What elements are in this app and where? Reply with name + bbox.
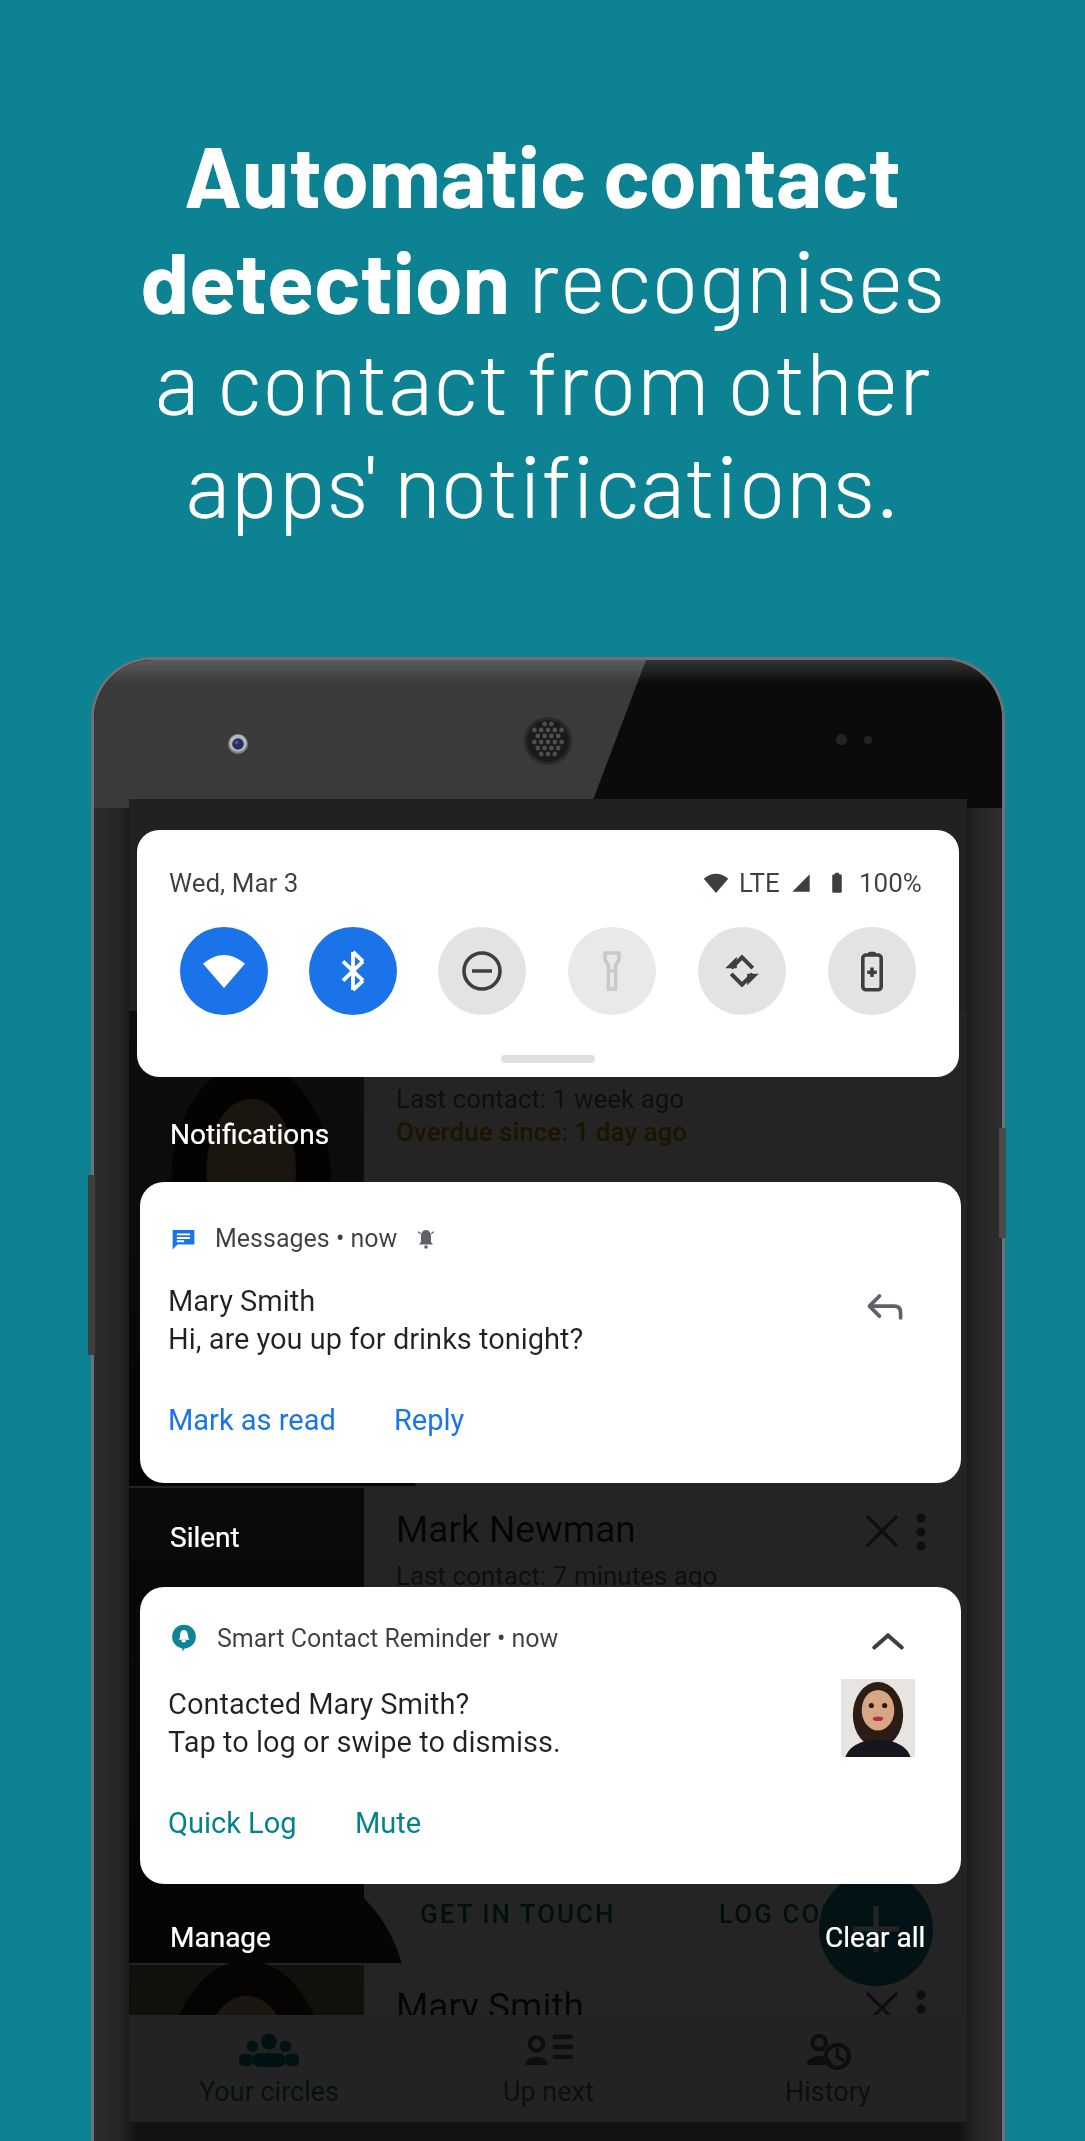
- button[interactable]: LOG CONTACT: [719, 1899, 914, 1929]
- staticText: detection: [140, 228, 510, 331]
- staticText: Smart Contact Reminder • now: [217, 1624, 559, 1653]
- button[interactable]: Up next: [409, 2015, 688, 2122]
- staticText: Tap to log or swipe to dismiss.: [168, 1725, 561, 1759]
- button[interactable]: History: [688, 2015, 967, 2122]
- other: More options: [915, 1512, 927, 1552]
- button[interactable]: Reply: [394, 1403, 465, 1437]
- staticText: Silent: [170, 1521, 240, 1554]
- button[interactable]: Wi-Fi: [180, 927, 268, 1015]
- button[interactable]: Your circles: [129, 2015, 409, 2122]
- button[interactable]: GET IN TOUCH: [420, 1422, 616, 1452]
- staticText: a contact from other: [154, 327, 931, 433]
- button[interactable]: Battery saver: [828, 927, 916, 1015]
- staticText: apps' notifications.: [185, 430, 900, 536]
- staticText: LTE: [739, 868, 780, 898]
- staticText: History: [785, 2076, 871, 2108]
- staticText: Last contact: 1 week ago: [396, 1084, 685, 1114]
- staticText: Mark Newman: [396, 1508, 636, 1551]
- staticText: Overdue since: 1 day ago: [396, 1117, 688, 1147]
- other: Reply: [863, 1285, 907, 1329]
- button[interactable]: Add contact: [819, 1872, 933, 1986]
- button[interactable]: Clear all: [825, 1921, 926, 1954]
- button[interactable]: GET IN TOUCH: [420, 1899, 616, 1929]
- button[interactable]: Quick Log: [168, 1806, 297, 1840]
- button[interactable]: Smart Contact Reminder • now: [140, 1587, 961, 1884]
- other: Dismiss: [867, 1993, 897, 2023]
- other: Dismiss: [867, 1516, 897, 1546]
- button[interactable]: Mark as read: [168, 1403, 336, 1437]
- button[interactable]: Mark Newman: [129, 1488, 967, 1965]
- button[interactable]: Mute: [355, 1806, 422, 1840]
- staticText: Notifications: [170, 1118, 330, 1151]
- other: More options: [915, 1989, 927, 2029]
- staticText: 100%: [859, 868, 922, 898]
- staticText: Contacted Mary Smith?: [168, 1687, 470, 1721]
- staticText: Wed, Mar 3: [169, 868, 299, 898]
- staticText: Last contact: 2 days ago: [396, 2038, 679, 2068]
- staticText: Automatic contact: [184, 122, 901, 225]
- staticText: Up next: [503, 2076, 594, 2108]
- button[interactable]: Manage: [170, 1921, 271, 1954]
- staticText: Mary Smith: [168, 1284, 316, 1318]
- staticText: Last contact: 7 minutes ago: [396, 1561, 718, 1591]
- staticText: Mary Smith: [396, 1985, 584, 2028]
- button[interactable]: Do not disturb: [438, 927, 526, 1015]
- staticText: Messages • now: [215, 1224, 398, 1253]
- staticText: Your circles: [199, 2076, 340, 2108]
- button[interactable]: Flashlight: [568, 927, 656, 1015]
- staticText: recognises: [528, 225, 945, 331]
- button[interactable]: Mary Smith: [129, 1011, 967, 1488]
- staticText: Mary Smith: [396, 1031, 584, 1074]
- staticText: Hi, are you up for drinks tonight?: [168, 1322, 584, 1356]
- other: Collapse: [866, 1620, 910, 1664]
- button[interactable]: Mary Smith: [129, 1965, 967, 2122]
- button[interactable]: Auto-rotate: [698, 927, 786, 1015]
- button[interactable]: Bluetooth: [309, 927, 397, 1015]
- button[interactable]: Messages • now: [140, 1182, 961, 1483]
